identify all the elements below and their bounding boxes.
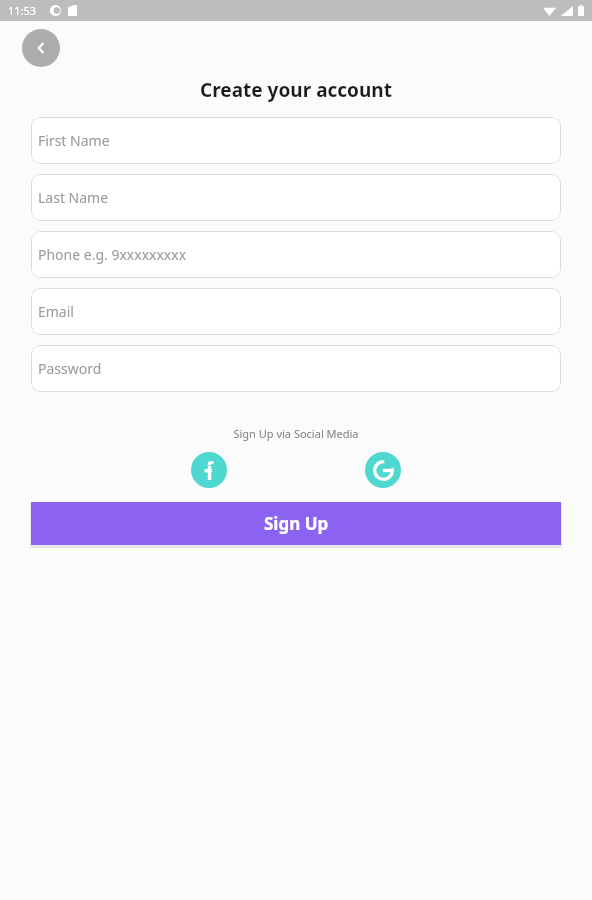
button[interactable]: Phone e.g. 9xxxxxxxxx — [31, 231, 561, 278]
button[interactable]: Password — [31, 345, 561, 392]
button[interactable]: Back — [22, 29, 60, 67]
button[interactable]: First Name — [31, 117, 561, 164]
staticText: Sign Up via Social Media — [0, 426, 592, 441]
staticText: Sign Up — [264, 512, 329, 535]
staticText: Create your account — [0, 77, 592, 103]
staticText: Phone e.g. 9xxxxxxxxx — [38, 245, 187, 264]
staticText: First Name — [38, 131, 110, 150]
button[interactable]: Sign up with Facebook — [191, 452, 227, 488]
button[interactable]: Sign Up — [31, 502, 561, 545]
staticText: Email — [38, 302, 74, 321]
staticText: 11:53 — [8, 3, 37, 18]
staticText: Last Name — [38, 188, 109, 207]
button[interactable]: Sign up with Google — [365, 452, 401, 488]
button[interactable]: Last Name — [31, 174, 561, 221]
button[interactable]: Email — [31, 288, 561, 335]
staticText: Password — [38, 359, 102, 378]
